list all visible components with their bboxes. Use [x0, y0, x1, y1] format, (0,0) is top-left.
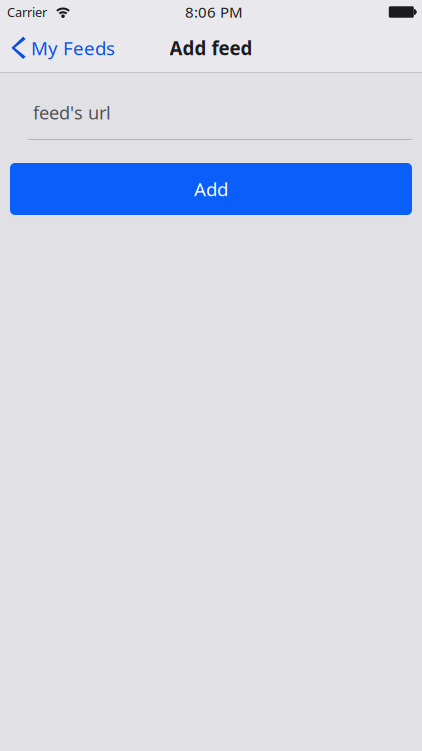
staticText: 8:06 PM — [185, 2, 243, 22]
button[interactable]: My Feeds — [0, 24, 125, 72]
staticText: Add — [194, 176, 228, 202]
staticText: Add feed — [169, 35, 252, 61]
staticText: My Feeds — [31, 35, 115, 61]
button[interactable]: feed's url — [28, 89, 412, 140]
staticText: Carrier — [7, 3, 47, 21]
button[interactable]: Add — [10, 163, 412, 215]
staticText: feed's url — [33, 100, 111, 125]
